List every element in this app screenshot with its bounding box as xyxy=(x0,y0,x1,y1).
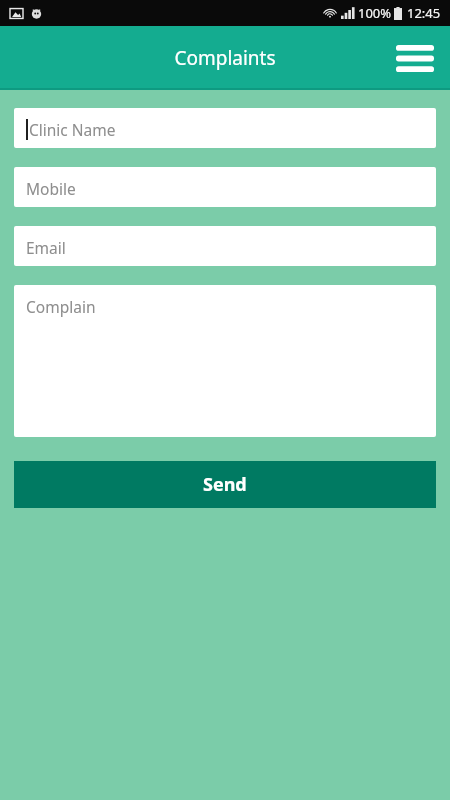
staticText: 100% xyxy=(358,4,392,22)
staticText: Clinic Name xyxy=(29,119,116,140)
button[interactable]: Mobile xyxy=(14,167,436,207)
button[interactable]: Complain xyxy=(14,285,436,437)
staticText: 12:45 xyxy=(407,4,441,22)
staticText: Send xyxy=(203,472,247,497)
button[interactable]: Open navigation menu xyxy=(388,31,442,85)
button[interactable]: Email xyxy=(14,226,436,266)
staticText: Complain xyxy=(26,296,96,317)
button[interactable]: Send xyxy=(14,461,436,508)
staticText: Email xyxy=(26,237,66,258)
button[interactable]: Clinic Name xyxy=(14,108,436,148)
staticText: Mobile xyxy=(26,178,76,199)
staticText: Complaints xyxy=(174,45,276,71)
